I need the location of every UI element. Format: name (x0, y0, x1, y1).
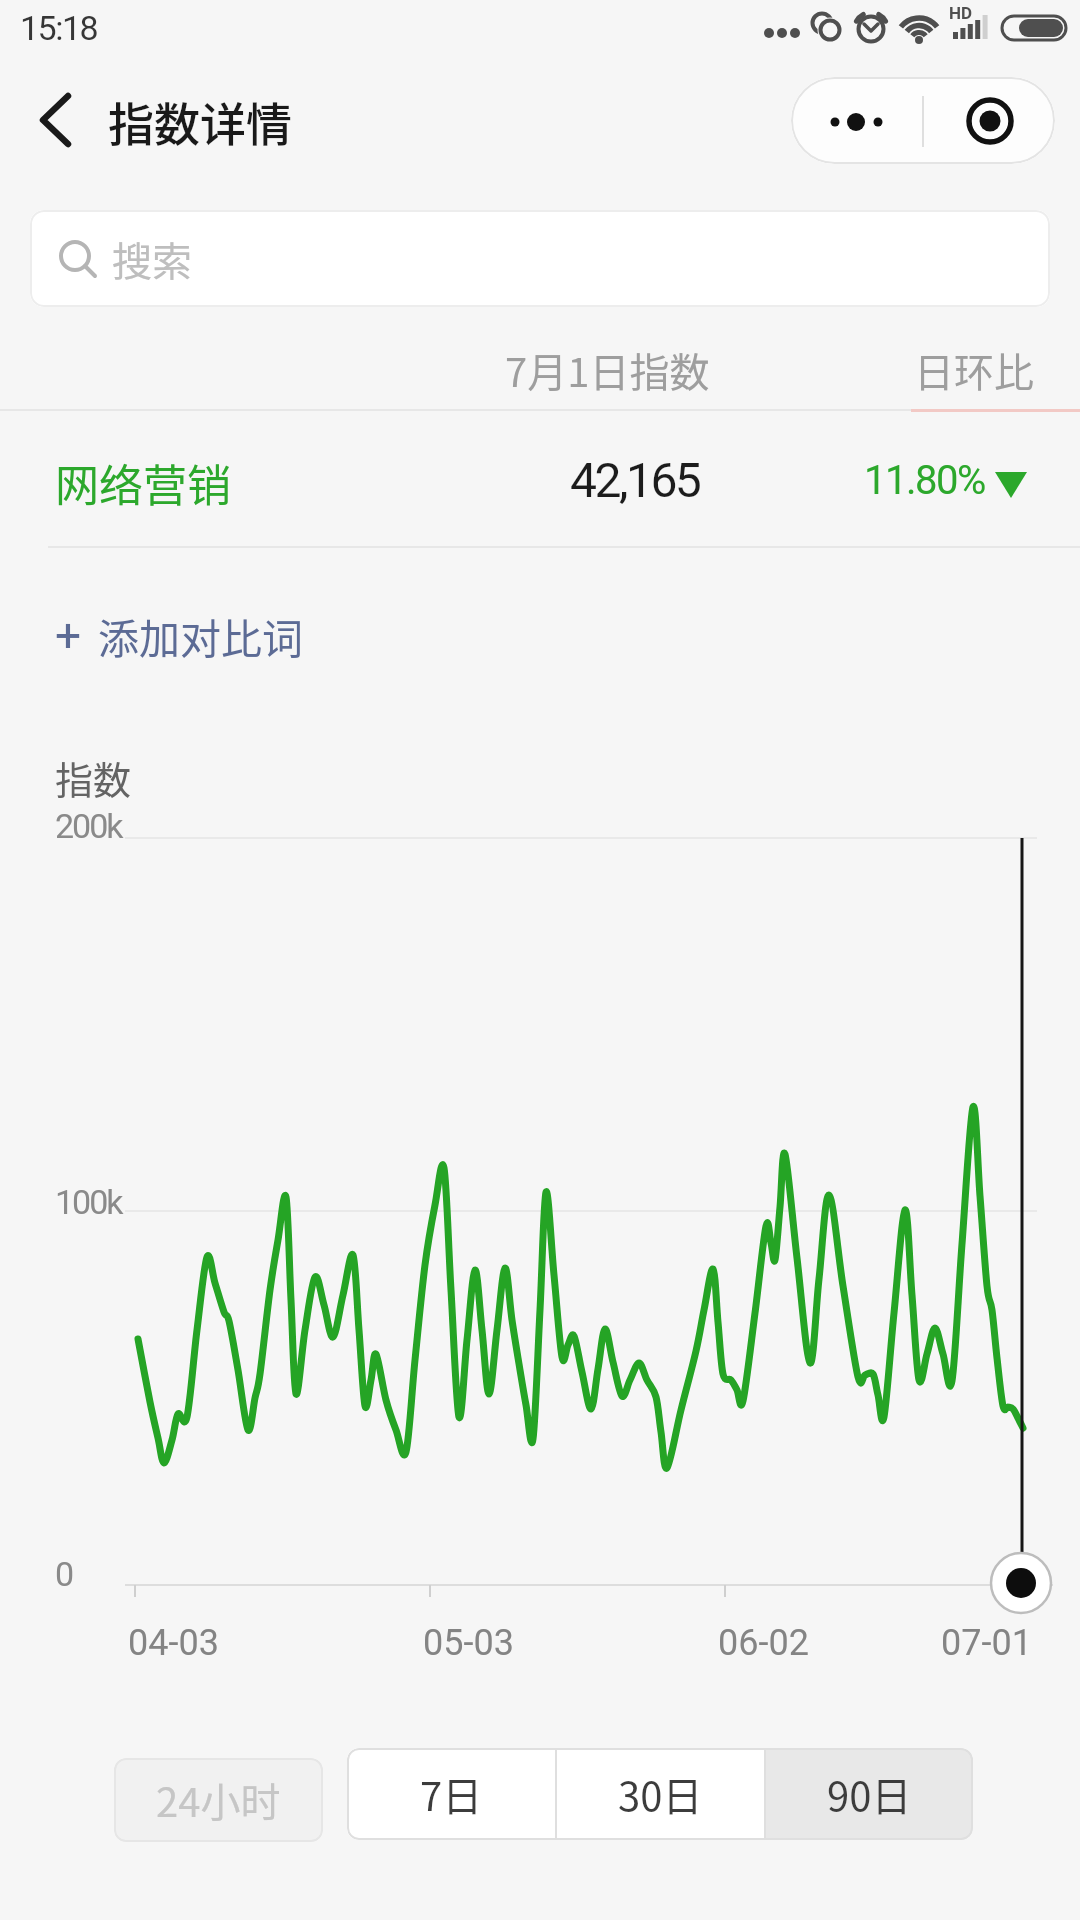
button[interactable]: 90日 (766, 1748, 973, 1840)
staticText: 7日 (420, 1765, 483, 1823)
staticText: 指数 (55, 750, 132, 805)
staticText: 90日 (827, 1765, 912, 1823)
button[interactable] (923, 77, 1055, 164)
button[interactable]: 24小时 (114, 1758, 323, 1842)
button[interactable]: 30日 (557, 1748, 764, 1840)
staticText: + (55, 608, 82, 662)
staticText: 04-03 (128, 1622, 219, 1664)
staticText: 7月1日指数 (505, 341, 710, 399)
staticText: 添加对比词 (98, 606, 303, 665)
staticText: 指数详情 (108, 88, 292, 155)
staticText: 06-02 (718, 1622, 809, 1664)
staticText: 07-01 (941, 1622, 1032, 1664)
staticText: 网络营销 (55, 451, 231, 515)
staticText: 30日 (618, 1765, 703, 1823)
button[interactable]: 网络营销 (0, 411, 1080, 548)
staticText: 200k (55, 806, 122, 846)
staticText: 搜索 (112, 230, 192, 288)
staticText: 15:18 (20, 8, 98, 48)
button[interactable]: 搜索 (30, 210, 1050, 307)
staticText: HD (949, 3, 973, 23)
staticText: 100k (55, 1182, 122, 1222)
staticText: 11.80% (864, 457, 985, 504)
staticText: 05-03 (423, 1622, 514, 1664)
staticText: 日环比 (914, 341, 1034, 399)
button[interactable]: + (40, 600, 323, 670)
button[interactable] (20, 85, 90, 155)
staticText: 24小时 (156, 1771, 281, 1829)
button[interactable] (791, 77, 923, 164)
staticText: 42,165 (570, 452, 700, 508)
staticText: 0 (55, 1554, 75, 1594)
button[interactable]: 7日 (347, 1748, 555, 1840)
